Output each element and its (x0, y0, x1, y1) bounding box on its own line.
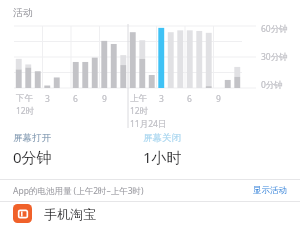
staticText: App的电池用量 (上午2时–上午3时) (13, 185, 253, 197)
staticText: 60分钟 (261, 23, 288, 35)
staticText: 1小时 (143, 147, 182, 167)
staticText: 6 (73, 93, 78, 105)
staticText: 手机淘宝 (44, 206, 96, 222)
staticText: 活动 (13, 6, 33, 19)
staticText: 9 (216, 93, 221, 105)
button[interactable]: 手机淘宝 图标 (0, 202, 300, 225)
staticText: 0分钟 (13, 147, 52, 167)
staticText: 9 (102, 93, 107, 105)
button[interactable]: 显示活动 (253, 185, 287, 196)
staticText: 11月24日 (130, 118, 167, 129)
staticText: 3 (159, 93, 164, 105)
staticText: 12时 (130, 105, 149, 117)
staticText: 下午 (16, 93, 33, 104)
staticText: 30分钟 (261, 51, 288, 63)
staticText: 6 (187, 93, 192, 105)
staticText: 屏幕关闭 (143, 132, 181, 144)
other: 手机淘宝 图标 (13, 204, 32, 223)
staticText: 12时 (16, 105, 35, 117)
staticText: 显示活动 (253, 185, 287, 196)
staticText: 上午 (130, 93, 147, 104)
staticText: 屏幕打开 (13, 132, 51, 144)
staticText: 0分钟 (261, 79, 283, 91)
staticText: 3 (45, 93, 50, 105)
